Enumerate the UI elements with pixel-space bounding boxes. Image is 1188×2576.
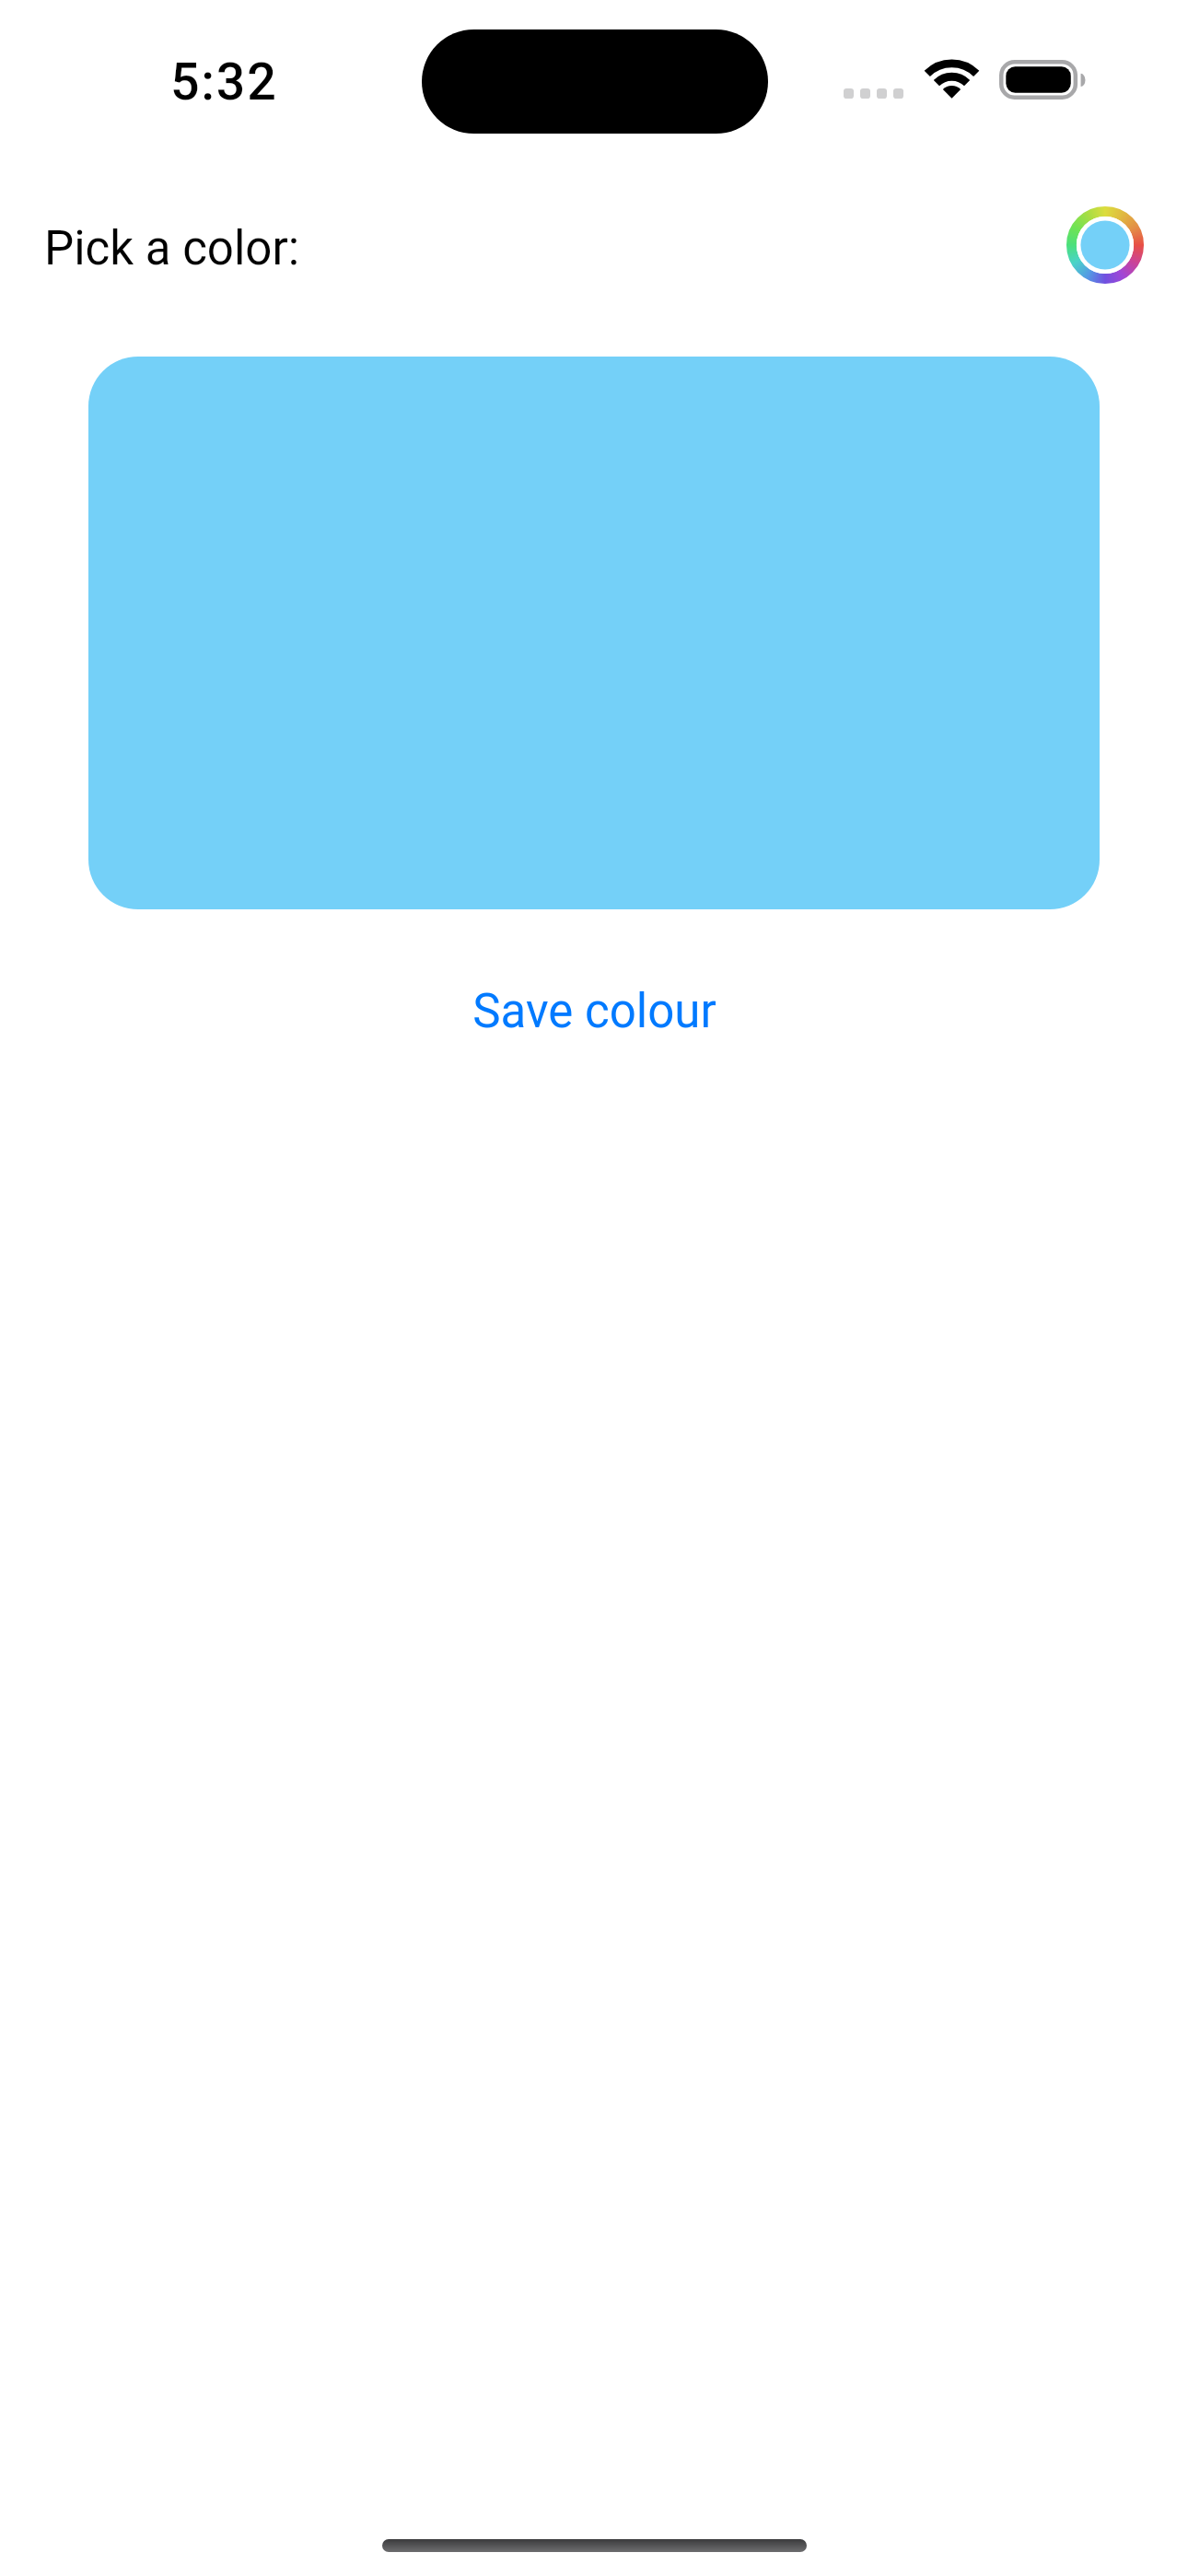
button[interactable]: Open color picker <box>1066 206 1144 284</box>
button[interactable]: Save colour <box>445 976 744 1048</box>
staticText: Pick a color: <box>44 221 300 276</box>
button[interactable]: Selected colour <box>88 357 1100 909</box>
staticText: 5:32 <box>170 53 278 112</box>
